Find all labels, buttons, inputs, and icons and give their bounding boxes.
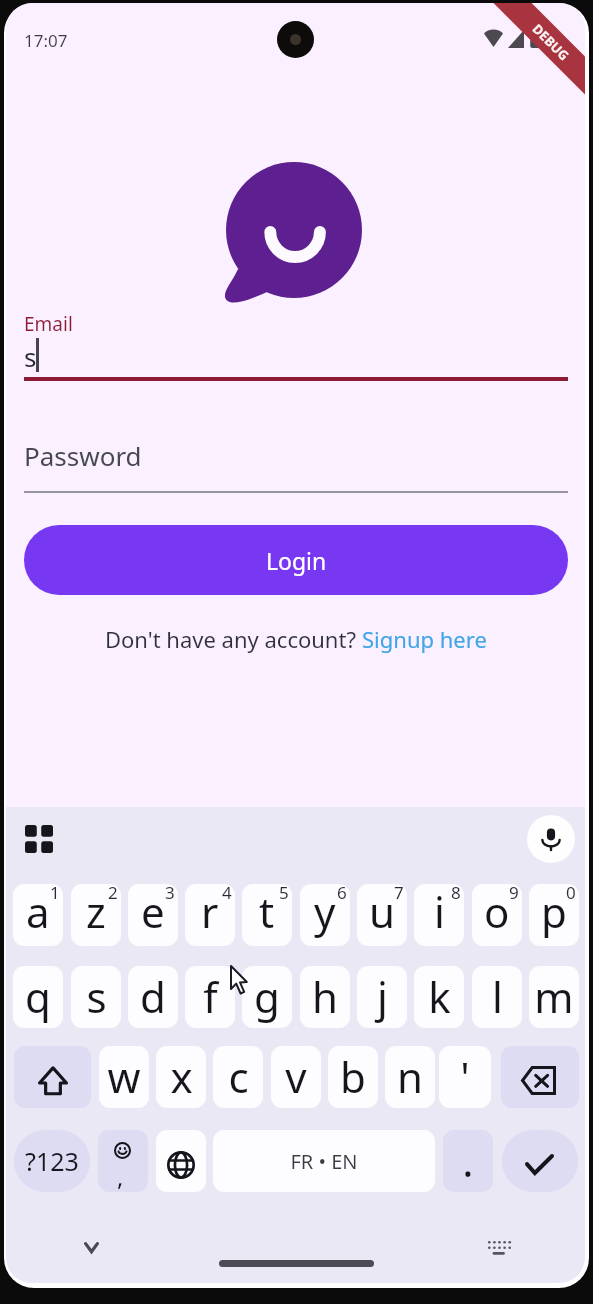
button[interactable]: x [156,1046,206,1108]
staticText: . [462,1132,474,1189]
button[interactable]: o [472,884,522,946]
staticText: u [369,884,395,940]
button[interactable]: s [71,966,121,1028]
staticText: Don't have any account? [105,624,362,654]
button[interactable]: b [328,1046,378,1108]
staticText: 5 [279,884,289,904]
staticText: s [86,968,107,1025]
button[interactable] [502,1130,578,1192]
staticText: 8 [451,884,461,904]
staticText: Email [24,311,73,337]
button[interactable]: d [128,966,178,1028]
button[interactable]: FR • EN [213,1130,435,1192]
button[interactable]: z [71,884,121,946]
staticText: b [340,1048,366,1105]
staticText: o [484,884,510,940]
staticText: c [228,1048,249,1105]
staticText: n [397,1048,423,1105]
button[interactable]: Login [24,525,568,595]
staticText: 0 [566,884,576,904]
button[interactable] [156,1130,206,1192]
staticText: s [24,339,37,374]
staticText: a [26,884,50,940]
staticText: ?123 [25,1144,79,1178]
button[interactable]: Voice input [527,815,575,863]
staticText: m [534,968,574,1025]
button[interactable]: g [242,966,292,1028]
staticText: v [285,1048,307,1105]
staticText: f [203,968,218,1025]
button[interactable]: m [529,966,579,1028]
staticText: DEBUG [529,20,573,64]
staticText: ' [460,1048,470,1105]
button[interactable]: n [385,1046,435,1108]
button[interactable]: Signup here [362,624,487,654]
staticText: p [541,884,567,940]
button[interactable]: w [99,1046,149,1108]
button[interactable]: ' [439,1046,491,1108]
button[interactable]: y [300,884,350,946]
button[interactable]: u [357,884,407,946]
staticText: g [254,968,280,1025]
staticText: 17:07 [24,29,68,52]
staticText: i [434,884,445,940]
staticText: Password [24,438,142,473]
button[interactable]: e [128,884,178,946]
button[interactable]: a [13,884,63,946]
button[interactable]: h [300,966,350,1028]
staticText: 6 [337,884,347,904]
button[interactable]: c [213,1046,263,1108]
button[interactable]: v [271,1046,321,1108]
staticText: d [140,968,166,1025]
button[interactable]: j [357,966,407,1028]
staticText: y [314,884,336,940]
staticText: Signup here [362,624,487,654]
staticText: j [377,968,388,1025]
button[interactable]: ?123 [14,1130,90,1192]
button[interactable]: p [529,884,579,946]
button[interactable]: l [472,966,522,1028]
staticText: q [25,968,51,1025]
staticText: t [259,884,275,940]
staticText: 1 [50,884,60,904]
staticText: l [492,968,503,1025]
staticText: e [141,884,165,940]
staticText: r [201,884,219,940]
button[interactable]: Hide keyboard [84,1241,99,1254]
staticText: 9 [509,884,519,904]
button[interactable]: i [414,884,464,946]
staticText: 3 [165,884,175,904]
button[interactable]: k [414,966,464,1028]
button[interactable] [14,1046,91,1108]
button[interactable]: Switch input method [488,1241,511,1255]
staticText: k [428,968,451,1025]
button[interactable] [501,1046,579,1108]
button[interactable]: r [185,884,235,946]
staticText: z [86,884,106,940]
staticText: h [312,968,338,1025]
button[interactable]: Keyboard settings [25,825,53,853]
staticText: , [117,1160,124,1192]
button[interactable]: f [185,966,235,1028]
staticText: Login [266,545,327,576]
staticText: 4 [222,884,232,904]
button[interactable]: t [242,884,292,946]
staticText: 7 [394,884,404,904]
button[interactable]: , [98,1130,148,1192]
button[interactable]: . [443,1130,493,1192]
staticText: FR • EN [290,1148,358,1175]
staticText: 2 [108,884,118,904]
staticText: w [107,1048,141,1105]
staticText: x [170,1048,193,1105]
button[interactable]: q [13,966,63,1028]
